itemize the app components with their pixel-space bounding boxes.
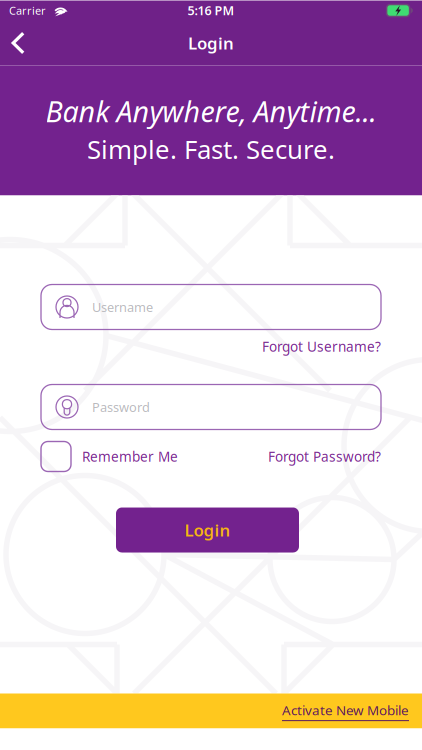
staticText: Password [92, 398, 150, 416]
staticText: Simple. Fast. Secure. [87, 131, 335, 166]
staticText: Forgot Password? [268, 447, 381, 466]
staticText: Login [184, 519, 230, 541]
staticText: Carrier [9, 3, 46, 18]
staticText: Bank Anywhere, Anytime... [45, 91, 376, 130]
staticText: Activate New Mobile [282, 701, 409, 719]
button[interactable]: Activate New Mobile [0, 693, 422, 728]
button[interactable]: Remember Me [41, 441, 178, 471]
button[interactable]: Back [0, 20, 40, 65]
button[interactable]: Forgot Username? [262, 329, 381, 363]
button[interactable]: Login [116, 507, 299, 552]
staticText: Forgot Username? [262, 337, 381, 356]
button[interactable]: Forgot Password? [268, 441, 381, 471]
staticText: Username [92, 298, 153, 316]
staticText: 5:16 PM [187, 2, 234, 19]
staticText: Login [188, 32, 234, 54]
staticText: Remember Me [82, 447, 178, 466]
